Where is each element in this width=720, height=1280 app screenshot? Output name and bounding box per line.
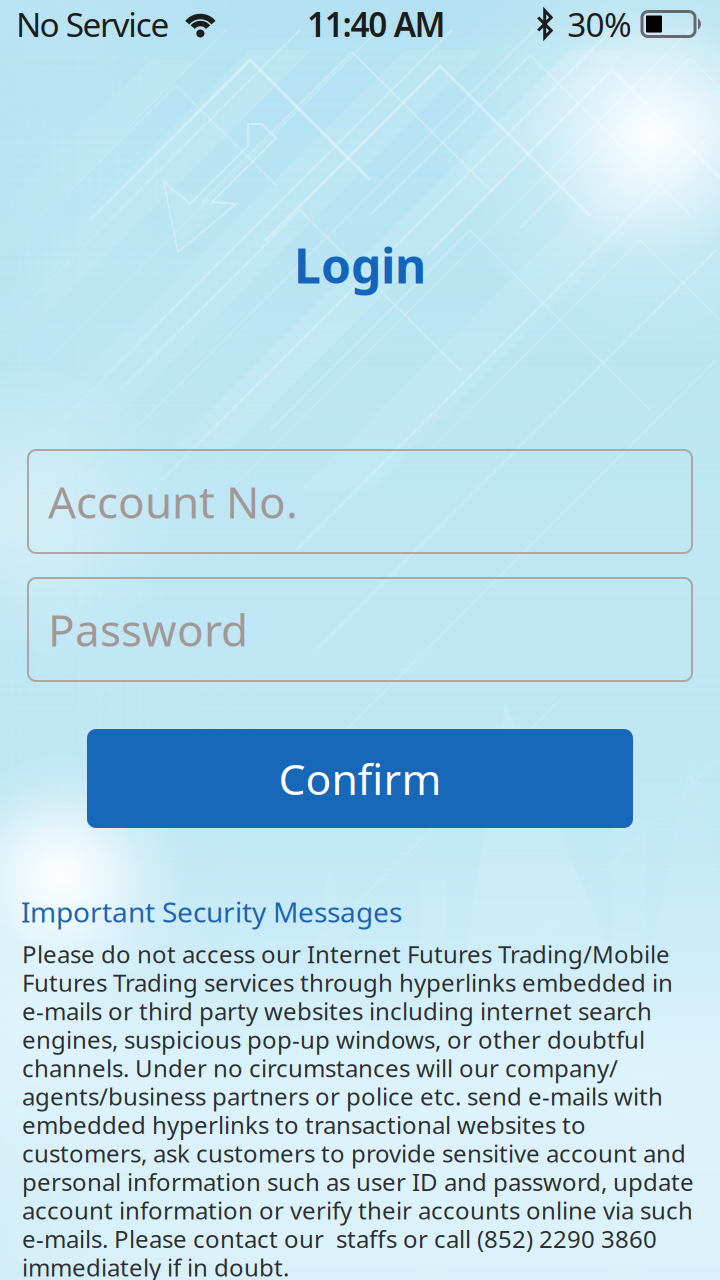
- staticText: No Service: [16, 2, 169, 46]
- button[interactable]: Confirm: [87, 729, 633, 828]
- staticText: 30%: [567, 2, 632, 46]
- staticText: Account No.: [48, 472, 298, 531]
- staticText: Please do not access our Internet Future…: [22, 938, 694, 1280]
- staticText: Important Security Messages: [21, 893, 402, 930]
- staticText: Confirm: [278, 750, 441, 807]
- button[interactable]: Important Security Messages: [21, 893, 402, 930]
- staticText: Login: [294, 233, 426, 297]
- staticText: Password: [48, 600, 248, 659]
- button[interactable]: Account No.: [28, 450, 692, 553]
- button[interactable]: Password: [28, 578, 692, 681]
- staticText: 11:40 AM: [307, 2, 446, 46]
